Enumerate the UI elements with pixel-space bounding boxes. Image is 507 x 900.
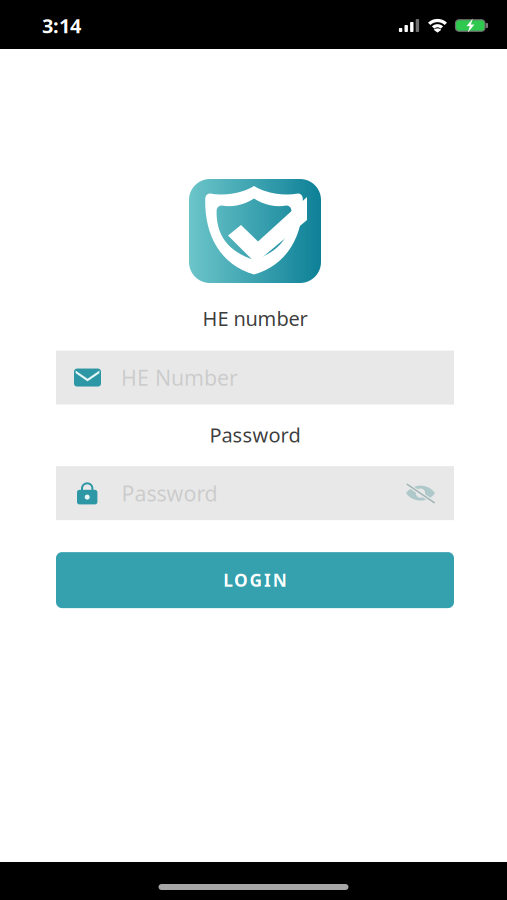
staticText: 3:14 xyxy=(42,12,81,39)
button[interactable]: HE Number xyxy=(56,351,454,405)
staticText: Password xyxy=(209,422,300,448)
button[interactable]: LOGIN xyxy=(56,552,454,608)
staticText: HE number xyxy=(202,305,307,332)
staticText: Password xyxy=(121,479,217,507)
button[interactable]: Password xyxy=(56,466,454,520)
staticText: HE Number xyxy=(121,363,238,392)
staticText: LOGIN xyxy=(223,569,287,592)
